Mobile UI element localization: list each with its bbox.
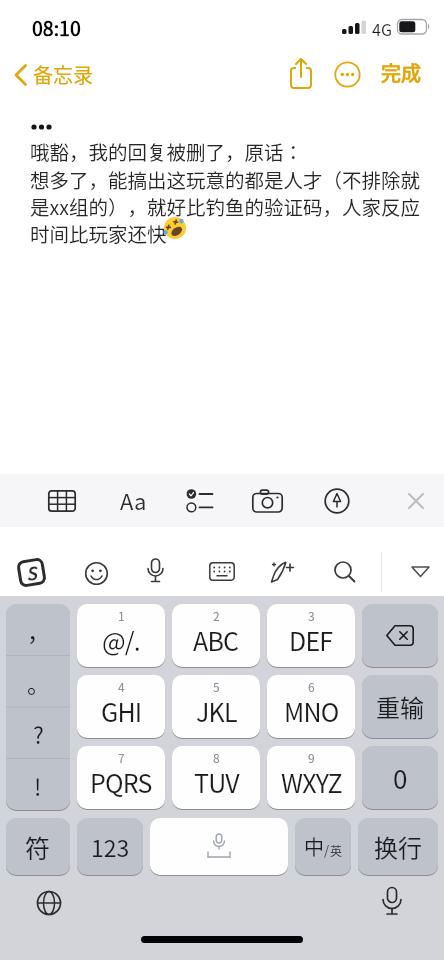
button[interactable]: 完成	[381, 58, 431, 90]
staticText: 1	[118, 607, 125, 624]
button[interactable]	[406, 491, 426, 511]
staticText: 英	[330, 842, 343, 859]
button[interactable]: 6	[267, 675, 355, 738]
staticText: DEF	[289, 622, 333, 658]
button[interactable]: 0	[362, 746, 438, 809]
button[interactable]	[378, 886, 406, 920]
staticText: 3	[308, 607, 315, 624]
button[interactable]: Aa	[115, 483, 151, 517]
button[interactable]: 123	[77, 818, 143, 875]
staticText: Aa	[120, 484, 147, 516]
staticText: 想多了，能搞出这玩意的都是人才（不排除就是xx组的），就好比钓鱼的验证码，人家反…	[30, 165, 422, 247]
staticText: 0	[393, 759, 408, 797]
button[interactable]	[269, 560, 295, 585]
button[interactable]: 5	[172, 675, 260, 738]
button[interactable]	[324, 488, 350, 514]
staticText: 。	[27, 666, 50, 699]
button[interactable]: 4	[77, 675, 165, 738]
button[interactable]	[186, 489, 214, 513]
staticText: 6	[308, 678, 315, 695]
button[interactable]	[34, 888, 64, 918]
staticText: 符	[25, 829, 51, 865]
button[interactable]	[334, 61, 361, 88]
staticText: 9	[308, 749, 315, 766]
button[interactable]	[410, 565, 432, 580]
button[interactable]	[333, 560, 357, 584]
staticText: /	[324, 840, 330, 859]
button[interactable]: 9	[267, 746, 355, 809]
button[interactable]: 1	[77, 604, 165, 667]
button[interactable]	[48, 490, 76, 512]
staticText: 换行	[374, 829, 422, 864]
staticText: ?	[33, 717, 44, 750]
staticText: 4G	[372, 17, 392, 40]
button[interactable]: 备忘录	[14, 58, 124, 92]
staticText: 08:10	[32, 13, 81, 41]
staticText: TUV	[194, 764, 239, 800]
button[interactable]	[150, 818, 288, 875]
button[interactable]: ，	[6, 604, 70, 810]
staticText: 4	[118, 678, 125, 695]
staticText: 中	[304, 832, 324, 861]
staticText: 哦豁，我的回复被删了，原话：	[30, 137, 304, 165]
staticText: ABC	[193, 622, 239, 658]
staticText: 7	[118, 749, 125, 766]
staticText: 完成	[381, 58, 421, 87]
staticText: PQRS	[90, 764, 152, 800]
staticText: !	[34, 769, 42, 802]
button[interactable]	[84, 561, 109, 586]
button[interactable]	[362, 604, 438, 667]
button[interactable]: 7	[77, 746, 165, 809]
staticText: 123	[91, 830, 130, 863]
button[interactable]: 2	[172, 604, 260, 667]
staticText: 重输	[376, 689, 424, 724]
button[interactable]	[145, 558, 166, 587]
staticText: 备忘录	[33, 60, 93, 89]
staticText: JKL	[196, 693, 237, 729]
button[interactable]: 8	[172, 746, 260, 809]
staticText: MNO	[284, 693, 339, 729]
button[interactable]: 符	[6, 818, 70, 875]
staticText: 8	[213, 749, 220, 766]
staticText: S	[24, 559, 39, 586]
button[interactable]: 重输	[362, 675, 438, 738]
staticText: GHI	[101, 693, 142, 729]
staticText: 2	[213, 607, 220, 624]
button[interactable]: 中	[295, 818, 351, 875]
button[interactable]	[252, 489, 283, 513]
staticText: @/.	[102, 622, 141, 658]
button[interactable]: S	[16, 557, 47, 588]
button[interactable]: 3	[267, 604, 355, 667]
button[interactable]	[209, 562, 235, 582]
button[interactable]: 换行	[358, 818, 438, 875]
button[interactable]	[286, 56, 318, 92]
staticText: WXYZ	[281, 764, 342, 800]
staticText: ，	[27, 614, 50, 647]
staticText: 5	[213, 678, 220, 695]
